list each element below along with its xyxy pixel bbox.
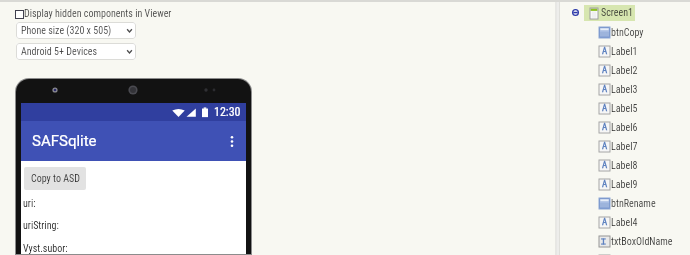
button[interactable]: Display hidden components in Viewer (15, 8, 172, 20)
staticText: Label6 (611, 122, 638, 134)
staticText: Label5 (611, 103, 638, 115)
button[interactable]: A (599, 175, 638, 194)
staticText: A (602, 65, 608, 76)
staticText: 12:30 (214, 105, 241, 119)
staticText: Label9 (611, 179, 638, 191)
staticText: Label8 (611, 160, 638, 172)
button[interactable]: txtBoxOldName (599, 232, 673, 251)
staticText: uriString: (23, 220, 59, 232)
staticText: A (602, 122, 608, 133)
button[interactable]: Screen1 (590, 5, 635, 21)
staticText: Vyst.subor: (23, 243, 68, 254)
button[interactable]: A (599, 80, 638, 99)
staticText: Copy to ASD (31, 173, 80, 185)
staticText: A (602, 141, 608, 152)
staticText: A (602, 179, 608, 190)
staticText: Android 5+ Devices (21, 46, 98, 58)
button[interactable]: A (599, 213, 638, 232)
staticText: Phone size (320 x 505) (21, 25, 112, 37)
staticText: Label1 (611, 46, 638, 58)
staticText: btnCopy (611, 27, 644, 39)
staticText: Label2 (611, 65, 638, 77)
button[interactable]: A (599, 156, 638, 175)
staticText: A (602, 217, 608, 228)
staticText: txtBoxOldName (611, 236, 673, 248)
button[interactable]: Android 5+ Devices (16, 43, 136, 60)
button[interactable]: A (599, 99, 638, 118)
staticText: Label3 (611, 84, 638, 96)
staticText: Display hidden components in Viewer (24, 8, 172, 20)
button[interactable]: Collapse Screen1 (570, 7, 581, 18)
staticText: A (602, 160, 608, 171)
staticText: Label7 (611, 141, 638, 153)
staticText: A (602, 46, 608, 57)
button[interactable]: A (599, 251, 643, 255)
staticText: uri: (23, 198, 36, 210)
staticText: btnRename (611, 198, 656, 210)
button[interactable]: A (599, 137, 638, 156)
staticText: Label4 (611, 217, 638, 229)
button[interactable]: Phone size (320 x 505) (16, 22, 136, 39)
staticText: SAFSqlite (32, 132, 97, 150)
button[interactable]: Copy to ASD (24, 167, 86, 190)
button[interactable]: A (599, 118, 638, 137)
button[interactable]: A (599, 42, 638, 61)
button[interactable]: More options (223, 133, 240, 150)
button[interactable]: A (599, 61, 638, 80)
staticText: A (602, 103, 608, 114)
staticText: A (602, 84, 608, 95)
button[interactable]: btnRename (599, 194, 656, 213)
button[interactable]: btnCopy (599, 23, 644, 42)
staticText: Screen1 (601, 7, 633, 19)
